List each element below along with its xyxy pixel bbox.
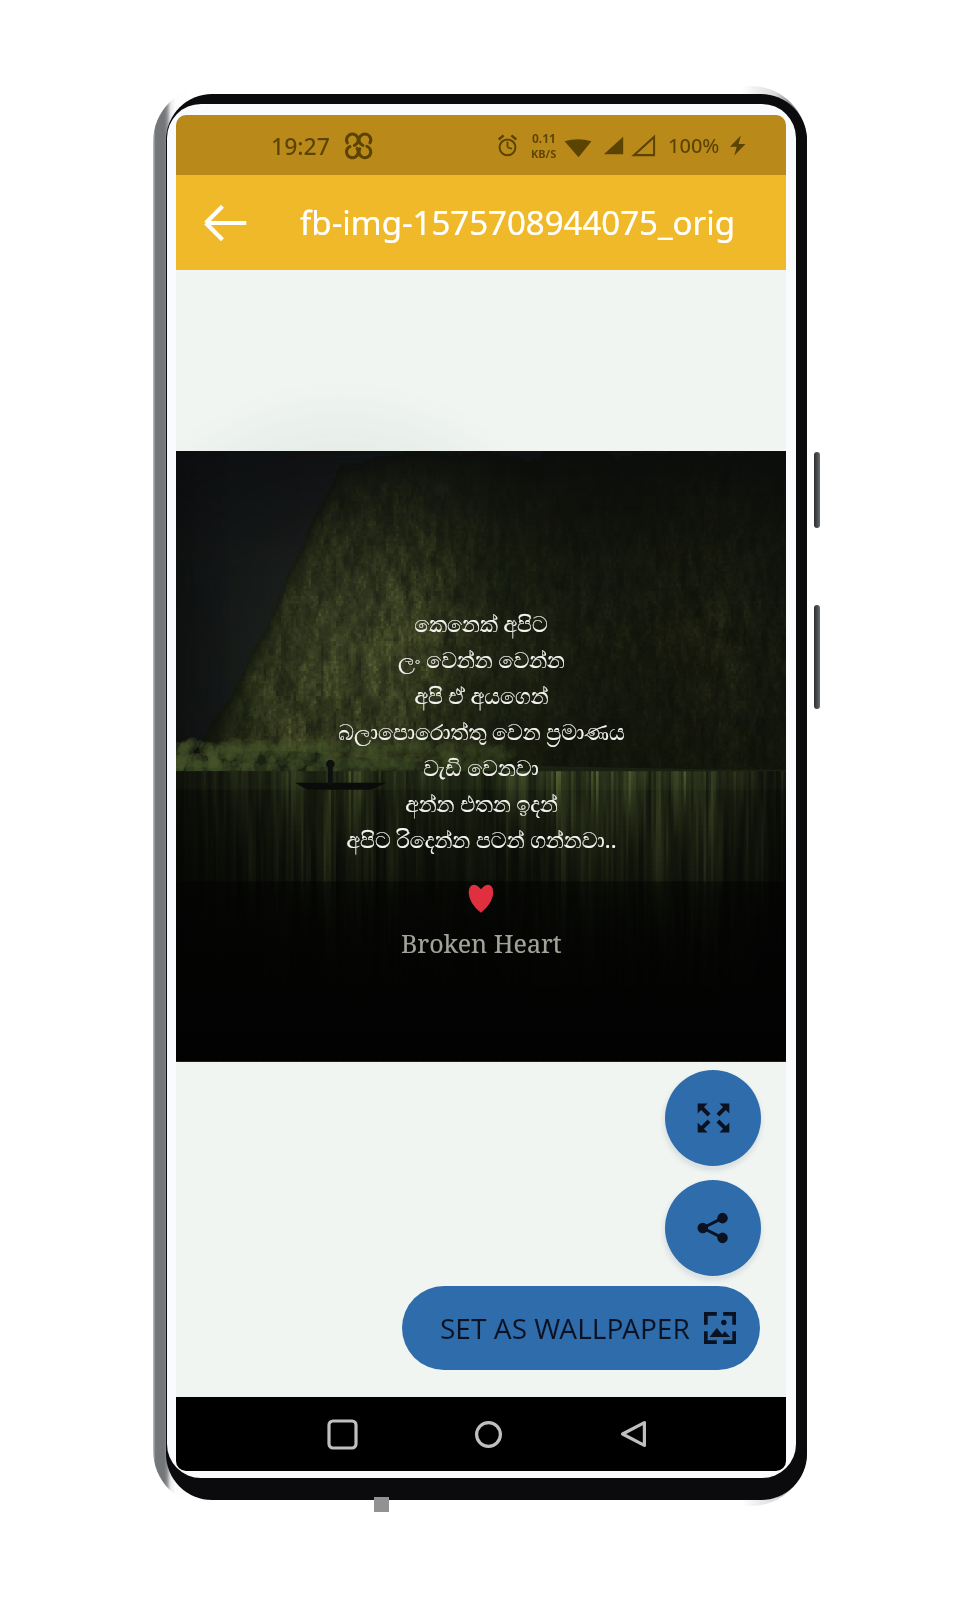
- staticText: KB/S: [531, 146, 557, 161]
- staticText: බලාපොරොත්තු වෙන ප්‍රමාණය: [338, 716, 625, 746]
- staticText: අපිට රිදෙන්න පටන් ගන්නවා..: [346, 824, 617, 854]
- button[interactable]: SET AS WALLPAPER: [402, 1286, 760, 1370]
- staticText: 100%: [668, 132, 720, 159]
- button[interactable]: Home: [457, 1403, 519, 1465]
- staticText: SET AS WALLPAPER: [440, 1309, 690, 1347]
- staticText: අපි ඒ අයගෙන්: [414, 680, 549, 710]
- staticText: ලං වෙන්න වෙන්න: [398, 644, 565, 674]
- staticText: කෙනෙක් අපිට: [414, 608, 548, 638]
- staticText: 0.11: [532, 130, 556, 146]
- button[interactable]: Back: [603, 1403, 665, 1465]
- staticText: Broken Heart: [401, 926, 562, 960]
- staticText: fb-img-1575708944075_orig: [300, 200, 736, 245]
- staticText: 19:27: [271, 130, 330, 161]
- staticText: අන්න එතන ඉදන්: [405, 788, 558, 818]
- staticText: වැඩි වෙනවා: [423, 752, 539, 782]
- button[interactable]: Back: [198, 195, 254, 251]
- button[interactable]: Share: [665, 1180, 761, 1276]
- button[interactable]: Full screen: [665, 1070, 761, 1166]
- button[interactable]: Recents: [311, 1403, 373, 1465]
